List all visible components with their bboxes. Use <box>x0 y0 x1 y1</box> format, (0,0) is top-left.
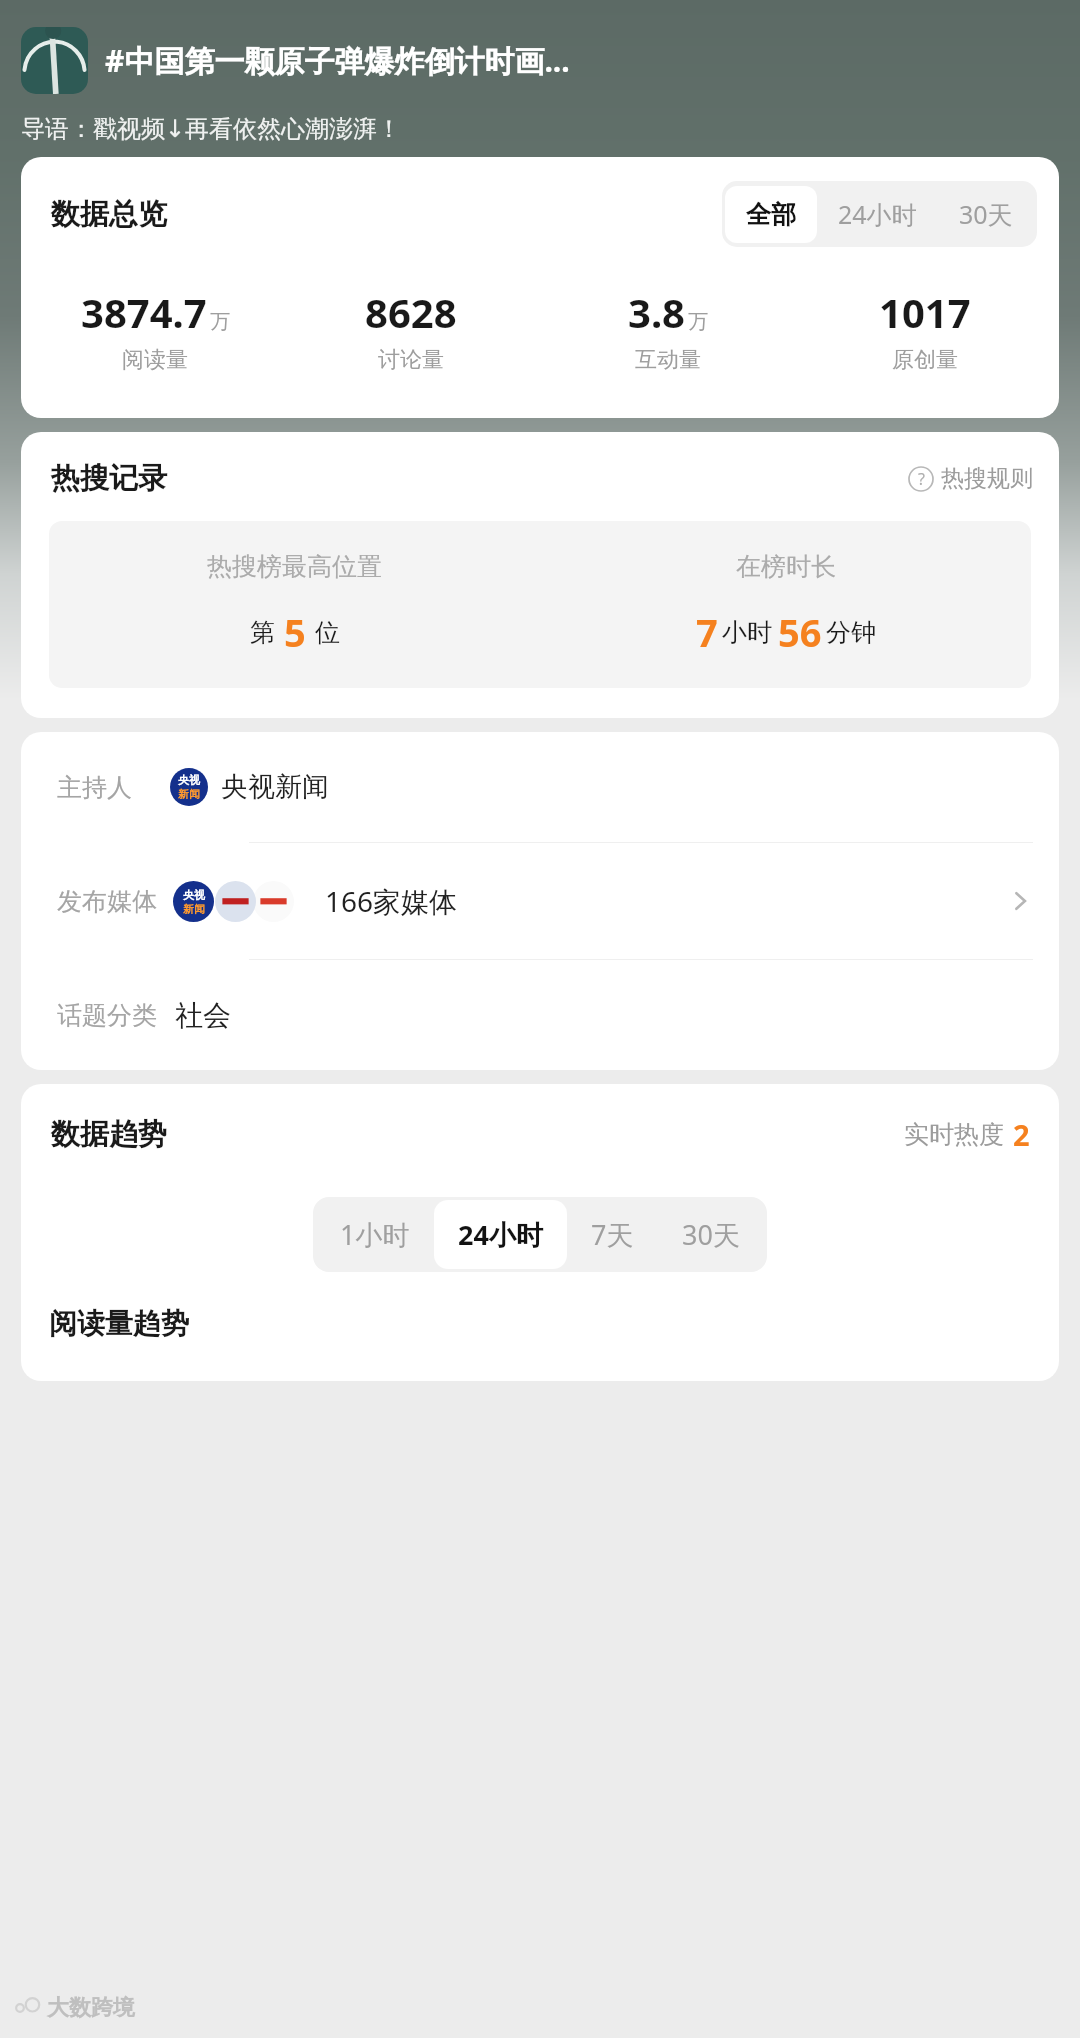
staticText: 30天 <box>682 1216 740 1253</box>
other: More media <box>1007 888 1033 914</box>
staticText: 央视新闻 <box>221 770 329 804</box>
staticText: 166家媒体 <box>325 882 458 920</box>
button[interactable]: 1小时 <box>316 1200 434 1269</box>
staticText: 1017 <box>879 285 971 339</box>
staticText: 8628 <box>365 285 457 339</box>
staticText: 发布媒体 <box>57 886 157 917</box>
button[interactable]: 话题分类 <box>21 960 1059 1070</box>
button[interactable]: 主持人 <box>21 732 1059 842</box>
staticText: 实时热度 <box>904 1119 1004 1150</box>
staticText: 央视 <box>178 773 200 787</box>
staticText: 全部 <box>746 199 796 230</box>
button[interactable]: 发布媒体 <box>21 843 1059 959</box>
staticText: 导语：戳视频↓再看依然心潮澎湃！ <box>21 114 402 144</box>
staticText: 原创量 <box>892 346 958 374</box>
staticText: 数据趋势 <box>51 1116 167 1153</box>
staticText: 话题分类 <box>57 1000 157 1031</box>
staticText: 互动量 <box>635 346 701 374</box>
button[interactable]: 热搜榜最高位置 <box>49 521 1031 688</box>
staticText: 热搜规则 <box>941 464 1033 493</box>
staticText: 分钟 <box>826 617 876 648</box>
staticText: 大数跨境 <box>47 1994 135 2022</box>
staticText: 央视 <box>183 888 205 902</box>
staticText: 第 <box>250 617 275 648</box>
staticText: 7 <box>696 606 718 658</box>
button[interactable]: 30天 <box>938 184 1034 244</box>
staticText: 56 <box>778 606 822 658</box>
staticText: 社会 <box>175 998 231 1033</box>
button[interactable]: 24小时 <box>434 1200 567 1269</box>
staticText: 2 <box>1013 1115 1030 1154</box>
staticText: #中国第一颗原子弹爆炸倒计时画... <box>105 40 570 81</box>
button[interactable]: 实时热度 <box>901 1112 1033 1157</box>
staticText: 小时 <box>722 617 772 648</box>
staticText: 热搜榜最高位置 <box>207 551 382 582</box>
staticText: ? <box>918 468 925 490</box>
staticText: 5 <box>284 606 306 658</box>
button[interactable]: 7天 <box>567 1200 658 1269</box>
staticText: 阅读量 <box>122 346 188 374</box>
staticText: 新闻 <box>183 902 205 916</box>
staticText: 位 <box>315 617 340 648</box>
staticText: 数据总览 <box>51 196 167 233</box>
staticText: 讨论量 <box>378 346 444 374</box>
staticText: 在榜时长 <box>736 551 836 582</box>
staticText: 30天 <box>959 197 1013 231</box>
staticText: 主持人 <box>57 772 132 803</box>
staticText: 3874.7 <box>81 285 207 339</box>
staticText: 24小时 <box>838 197 917 231</box>
button[interactable]: 全部 <box>725 186 817 243</box>
staticText: 阅读量趋势 <box>49 1306 189 1341</box>
staticText: 新闻 <box>178 787 200 801</box>
staticText: 万 <box>210 309 230 334</box>
button[interactable]: Topic image <box>21 27 88 94</box>
staticText: 7天 <box>591 1216 634 1253</box>
staticText: 1小时 <box>340 1216 410 1253</box>
button[interactable]: ? <box>904 460 1037 497</box>
staticText: 24小时 <box>458 1216 543 1253</box>
button[interactable]: 24小时 <box>817 184 938 244</box>
button[interactable]: 30天 <box>658 1200 764 1269</box>
staticText: 万 <box>688 309 708 334</box>
staticText: 热搜记录 <box>51 460 167 497</box>
staticText: 3.8 <box>628 285 685 339</box>
